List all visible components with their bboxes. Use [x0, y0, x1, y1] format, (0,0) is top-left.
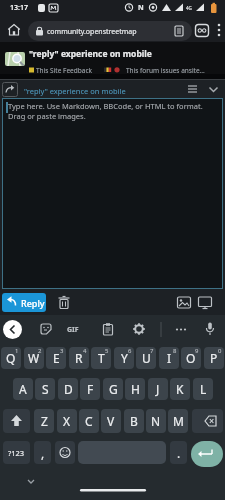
button[interactable]: O — [181, 347, 201, 369]
button[interactable]: M — [168, 409, 188, 433]
button[interactable] — [56, 294, 72, 312]
staticText: L — [200, 381, 207, 397]
staticText: 5 — [105, 347, 109, 355]
staticText: 4G — [186, 5, 192, 11]
staticText: This forum issues ansite... — [126, 66, 205, 75]
staticText: C — [85, 413, 93, 429]
button[interactable]: Q — [1, 347, 21, 369]
staticText: K — [176, 381, 184, 397]
button[interactable]: U — [136, 347, 156, 369]
button[interactable]: Y — [114, 347, 134, 369]
button[interactable]: Reply — [2, 293, 46, 312]
button[interactable]: P — [204, 347, 224, 369]
button[interactable]: R — [69, 347, 89, 369]
button[interactable]: I — [159, 347, 179, 369]
button[interactable] — [101, 322, 115, 336]
staticText: M — [173, 413, 184, 429]
staticText: F — [87, 381, 94, 397]
staticText: "reply" experience on mobile — [24, 86, 126, 96]
button[interactable] — [3, 409, 30, 433]
button[interactable]: T — [91, 347, 111, 369]
staticText: This Site Feedback — [36, 66, 92, 75]
staticText: N — [151, 413, 161, 429]
staticText: community.openstreetmap — [47, 27, 137, 37]
staticText: E — [53, 350, 60, 366]
button[interactable]: . — [170, 441, 187, 464]
button[interactable] — [39, 322, 53, 336]
staticText: G — [109, 381, 118, 397]
button[interactable]: K — [170, 378, 190, 400]
button[interactable]: J — [148, 378, 168, 400]
staticText: 7 — [150, 347, 154, 355]
button[interactable]: L — [193, 378, 213, 400]
button[interactable]: F — [80, 378, 100, 400]
button[interactable] — [2, 82, 18, 97]
button[interactable] — [192, 409, 223, 433]
staticText: . — [177, 445, 181, 461]
button[interactable]: W — [24, 347, 44, 369]
staticText: A — [19, 381, 27, 397]
staticText: R — [75, 350, 83, 366]
staticText: 1 — [15, 347, 19, 355]
staticText: X — [63, 413, 71, 429]
button[interactable] — [213, 21, 225, 39]
staticText: 6 — [128, 347, 132, 355]
staticText: GIF — [67, 325, 79, 335]
button[interactable]: X — [57, 409, 77, 433]
staticText: S — [42, 381, 49, 397]
button[interactable] — [176, 295, 192, 310]
staticText: P — [210, 350, 218, 366]
button[interactable] — [185, 81, 200, 96]
staticText: 0 — [218, 347, 222, 355]
button[interactable]: Z — [34, 409, 54, 433]
staticText: 13:17 — [10, 3, 28, 13]
button[interactable]: E — [46, 347, 66, 369]
staticText: V — [107, 413, 115, 429]
staticText: U — [142, 350, 151, 366]
button[interactable]: Type here. Use Markdown, BBCode, or HTML… — [2, 98, 223, 289]
button[interactable] — [197, 295, 213, 310]
staticText: 9 — [195, 347, 199, 355]
staticText: T — [98, 350, 105, 366]
staticText: Y — [121, 350, 128, 366]
button[interactable] — [78, 441, 166, 464]
button[interactable]: community.openstreetmap — [28, 21, 192, 41]
button[interactable]: A — [13, 378, 33, 400]
button[interactable]: ?123 — [3, 441, 30, 464]
button[interactable] — [203, 321, 217, 337]
staticText: 8 — [173, 347, 177, 355]
button[interactable]: C — [79, 409, 99, 433]
button[interactable]: , — [34, 441, 51, 464]
button[interactable]: V — [101, 409, 121, 433]
button[interactable]: GIF — [66, 322, 84, 336]
button[interactable] — [55, 441, 75, 464]
button[interactable] — [3, 320, 22, 339]
button[interactable] — [6, 23, 22, 37]
button[interactable]: S — [35, 378, 55, 400]
staticText: Q — [6, 350, 16, 366]
staticText: N — [138, 3, 144, 13]
button[interactable] — [194, 23, 211, 39]
staticText: 3 — [60, 347, 64, 355]
button[interactable]: N — [146, 409, 166, 433]
staticText: 4 — [83, 347, 87, 355]
button[interactable] — [174, 322, 188, 336]
button[interactable]: H — [125, 378, 145, 400]
staticText: W — [28, 350, 40, 366]
button[interactable] — [191, 441, 223, 467]
staticText: H — [131, 381, 140, 397]
staticText: O — [186, 350, 196, 366]
staticText: B — [130, 413, 138, 429]
staticText: Type here. Use Markdown, BBCode, or HTML… — [8, 101, 203, 121]
button[interactable] — [206, 81, 221, 96]
staticText: ?123 — [8, 448, 25, 458]
button[interactable]: G — [103, 378, 123, 400]
button[interactable]: D — [58, 378, 78, 400]
staticText: D — [64, 381, 73, 397]
staticText: Reply — [21, 297, 45, 309]
staticText: "reply" experience on mobile — [29, 48, 152, 60]
button[interactable]: B — [124, 409, 144, 433]
button[interactable] — [132, 322, 146, 336]
staticText: Z — [41, 413, 48, 429]
staticText: J — [156, 381, 160, 397]
